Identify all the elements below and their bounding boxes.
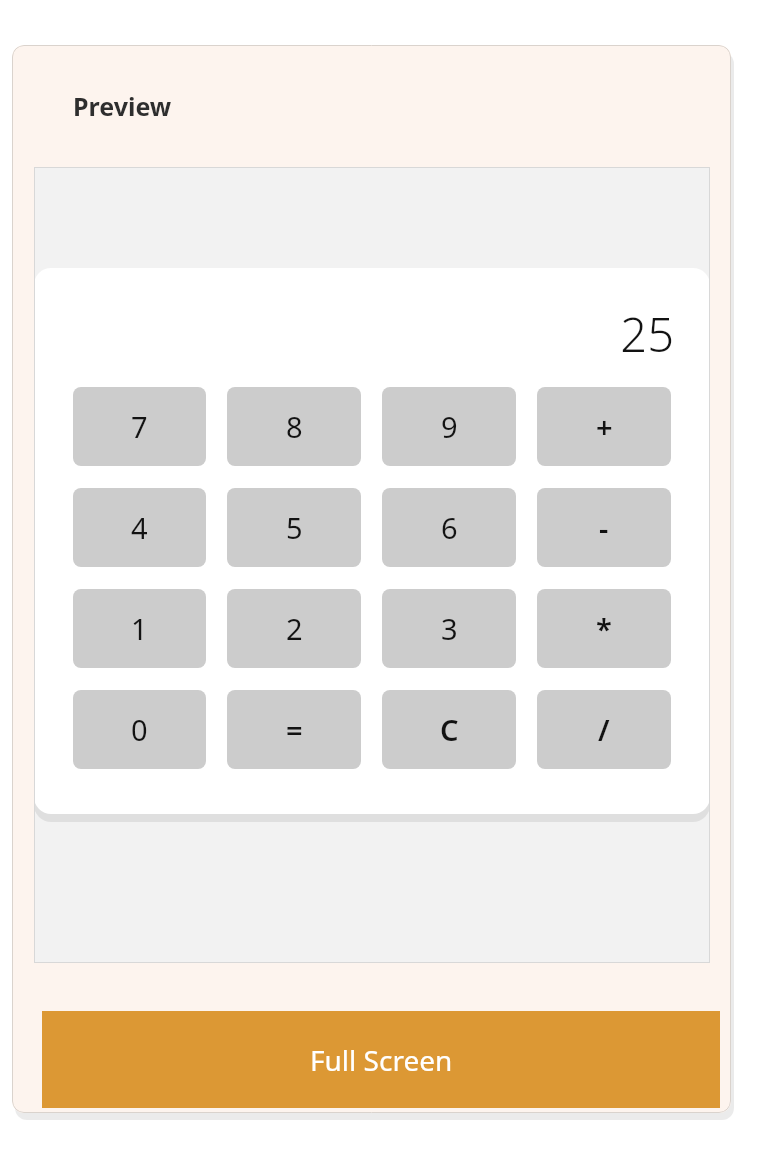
staticText: 3 [441,609,458,648]
button[interactable]: 3 [382,589,516,668]
staticText: Preview [73,89,172,123]
button[interactable]: 4 [73,488,206,567]
button[interactable]: - [537,488,671,567]
button[interactable]: 0 [73,690,206,769]
staticText: 1 [131,609,148,648]
staticText: 4 [131,508,148,547]
button[interactable]: 7 [73,387,206,466]
staticText: 0 [131,710,148,749]
button[interactable]: 2 [227,589,361,668]
staticText: 8 [286,407,303,446]
staticText: + [596,407,613,446]
button[interactable]: Full Screen [42,1011,720,1108]
staticText: 9 [441,407,458,446]
button[interactable]: 9 [382,387,516,466]
button[interactable]: = [227,690,361,769]
staticText: 6 [441,508,458,547]
button[interactable]: 8 [227,387,361,466]
button[interactable]: / [537,690,671,769]
staticText: 2 [286,609,303,648]
staticText: / [598,710,610,749]
staticText: * [596,609,612,648]
staticText: Full Screen [310,1041,453,1079]
button[interactable]: 5 [227,488,361,567]
button[interactable]: * [537,589,671,668]
button[interactable]: 6 [382,488,516,567]
button[interactable]: 1 [73,589,206,668]
staticText: 25 [620,302,674,366]
staticText: - [599,508,609,547]
staticText: C [440,710,459,749]
staticText: = [286,710,303,749]
staticText: 5 [286,508,303,547]
button[interactable]: + [537,387,671,466]
button[interactable]: C [382,690,516,769]
staticText: 7 [131,407,148,446]
